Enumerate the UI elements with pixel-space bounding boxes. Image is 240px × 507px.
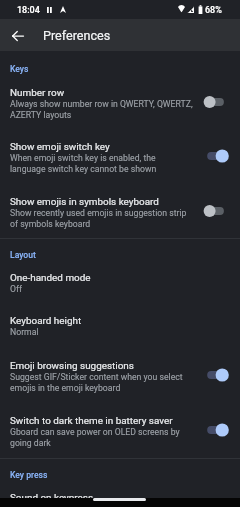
button[interactable]: Toggle on [202,146,232,166]
button[interactable]: Switch to dark theme in battery saver [0,415,240,459]
staticText: Gboard can save power on OLED screens by… [10,427,180,448]
button[interactable]: Show emojis in symbols keyboard [0,196,240,241]
button[interactable]: Toggle off [202,201,232,221]
button[interactable]: Keyboard height [0,315,240,360]
staticText: 68% [205,5,222,16]
staticText: Show emoji switch key [10,141,110,153]
button[interactable]: Sound on keypress [0,492,240,507]
staticText: Off [10,284,23,294]
staticText: Layout [10,250,36,260]
button[interactable]: Emoji browsing suggestions [0,360,240,415]
staticText: Always show number row in QWERTY, QWERTZ… [10,99,193,120]
staticText: When emoji switch key is enabled, the la… [10,153,157,174]
staticText: Keys [10,64,29,74]
staticText: Show recently used emojis in suggestion … [10,208,187,229]
staticText: Emoji browsing suggestions [10,360,134,372]
staticText: Normal [10,327,39,337]
button[interactable]: Toggle on [202,420,232,440]
button[interactable]: Toggle on [202,365,232,385]
button[interactable]: Back [2,20,34,52]
staticText: Key press [10,470,48,480]
button[interactable]: Toggle on [202,497,232,507]
staticText: Suggest GIF/Sticker content when you sel… [10,372,183,393]
staticText: 18:04 [17,5,40,16]
button[interactable]: Number row [0,87,240,141]
button[interactable]: One-handed mode [0,272,240,316]
staticText: Switch to dark theme in battery saver [10,415,173,427]
staticText: Number row [10,87,65,99]
staticText: Keyboard height [10,315,82,327]
button[interactable]: Toggle off [202,92,232,112]
staticText: Preferences [43,28,111,43]
staticText: Sound on keypress [10,492,94,504]
staticText: One-handed mode [10,272,91,284]
staticText: Show emojis in symbols keyboard [10,196,159,208]
button[interactable]: Show emoji switch key [0,141,240,196]
